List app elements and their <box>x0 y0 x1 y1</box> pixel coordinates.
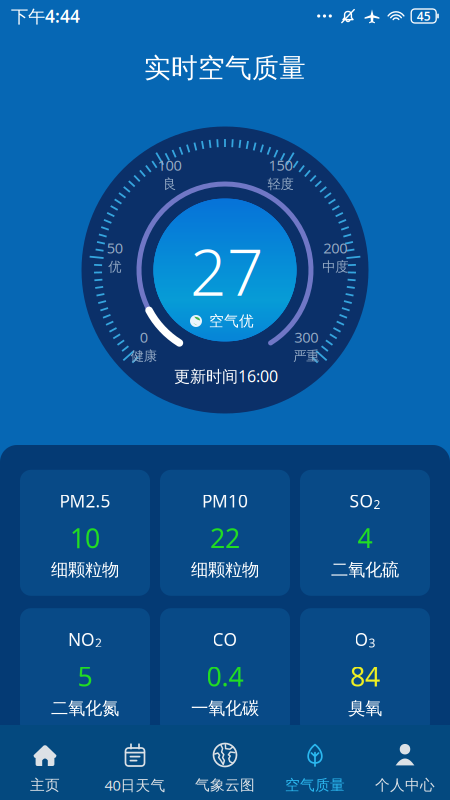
staticText: 实时空气质量 <box>144 52 306 84</box>
staticText: 2 <box>373 496 380 512</box>
button[interactable]: 气象云图 <box>180 725 270 800</box>
staticText: 一氧化碳 <box>191 698 259 719</box>
staticText: 空气质量 <box>285 776 345 794</box>
button[interactable]: PM2.5 <box>20 470 150 596</box>
staticText: 4 <box>357 520 372 555</box>
staticText: 150 <box>268 155 292 175</box>
staticText: 二氧化氮 <box>51 698 119 719</box>
button[interactable]: O <box>300 608 430 734</box>
button[interactable]: CO <box>160 608 290 734</box>
staticText: 40日天气 <box>104 775 165 795</box>
staticText: 气象云图 <box>195 776 255 794</box>
staticText: 下午4:44 <box>11 4 80 27</box>
staticText: 10 <box>70 520 100 555</box>
staticText: NO <box>68 628 95 651</box>
staticText: 细颗粒物 <box>191 559 259 580</box>
staticText: 轻度 <box>267 176 293 192</box>
staticText: 更新时间16:00 <box>174 365 278 387</box>
staticText: 300 <box>294 327 318 347</box>
staticText: PM2.5 <box>59 489 110 512</box>
staticText: O <box>354 628 368 651</box>
staticText: 22 <box>210 520 240 555</box>
staticText: 2 <box>95 635 102 651</box>
staticText: 臭氧 <box>348 698 382 719</box>
button[interactable]: 主页 <box>0 725 90 800</box>
staticText: 优 <box>108 258 121 275</box>
staticText: 二氧化硫 <box>331 559 399 580</box>
staticText: 0 <box>140 327 148 347</box>
button[interactable]: PM10 <box>160 470 290 596</box>
staticText: 细颗粒物 <box>51 559 119 580</box>
button[interactable]: 40日天气 <box>90 725 180 800</box>
button[interactable]: 个人中心 <box>360 725 450 800</box>
staticText: 50 <box>107 238 123 257</box>
staticText: 200 <box>323 238 347 257</box>
button[interactable]: NO <box>20 608 150 734</box>
staticText: 良 <box>163 176 176 192</box>
staticText: PM10 <box>202 489 248 512</box>
staticText: 5 <box>77 658 92 694</box>
staticText: 个人中心 <box>375 776 435 794</box>
staticText: 45 <box>417 8 431 24</box>
button[interactable]: 空气质量 <box>270 725 360 800</box>
staticText: 0.4 <box>206 658 243 694</box>
staticText: 健康 <box>131 348 157 364</box>
staticText: 84 <box>350 658 380 694</box>
staticText: 中度 <box>322 258 348 275</box>
staticText: CO <box>212 628 237 651</box>
staticText: SO <box>349 489 373 512</box>
button[interactable]: SO <box>300 470 430 596</box>
staticText: 100 <box>157 155 181 175</box>
staticText: 严重 <box>293 348 319 364</box>
staticText: 空气优 <box>209 312 254 330</box>
staticText: 27 <box>190 228 264 313</box>
staticText: 3 <box>368 635 375 651</box>
staticText: 主页 <box>30 776 60 794</box>
